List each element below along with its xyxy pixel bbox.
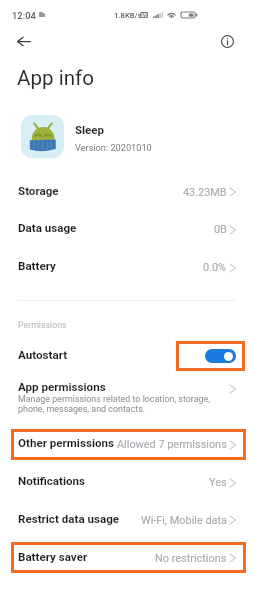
staticText: Allowed 7 permissions <box>117 438 227 451</box>
staticText: Data usage <box>18 221 77 235</box>
button[interactable] <box>11 175 246 212</box>
staticText: Yes <box>209 476 227 489</box>
button[interactable] <box>11 542 246 573</box>
staticText: Autostart <box>18 348 68 362</box>
staticText: Manage permissions related to location, … <box>18 394 210 415</box>
staticText: 43.23MB <box>183 186 227 199</box>
staticText: 0.0% <box>203 261 227 274</box>
button[interactable] <box>11 338 246 374</box>
staticText: Restrict data usage <box>18 512 120 526</box>
button[interactable] <box>11 374 246 424</box>
staticText: Battery saver <box>18 550 88 564</box>
staticText: Wi-Fi, Mobile data <box>141 514 227 527</box>
staticText: Permissions <box>18 320 67 330</box>
staticText: 0B <box>214 223 227 236</box>
button[interactable] <box>11 212 246 250</box>
staticText: No restrictions <box>155 552 227 565</box>
button[interactable]: Info <box>216 30 239 53</box>
staticText: App permissions <box>18 380 106 394</box>
button[interactable]: Autostart toggle <box>205 349 236 363</box>
button[interactable] <box>11 250 246 288</box>
staticText: Sleep <box>75 123 105 136</box>
button[interactable] <box>11 466 246 504</box>
staticText: Storage <box>18 184 59 198</box>
staticText: App info <box>17 66 94 90</box>
staticText: 12:04 <box>12 10 36 21</box>
staticText: Version: 20201010 <box>75 142 152 153</box>
staticText: Other permissions <box>18 436 114 450</box>
staticText: Notifications <box>18 474 86 488</box>
button[interactable] <box>11 429 246 460</box>
staticText: Battery <box>18 259 56 273</box>
staticText: 1.8KB/s <box>114 11 142 20</box>
button[interactable] <box>11 504 246 542</box>
button[interactable]: Back <box>12 30 35 53</box>
